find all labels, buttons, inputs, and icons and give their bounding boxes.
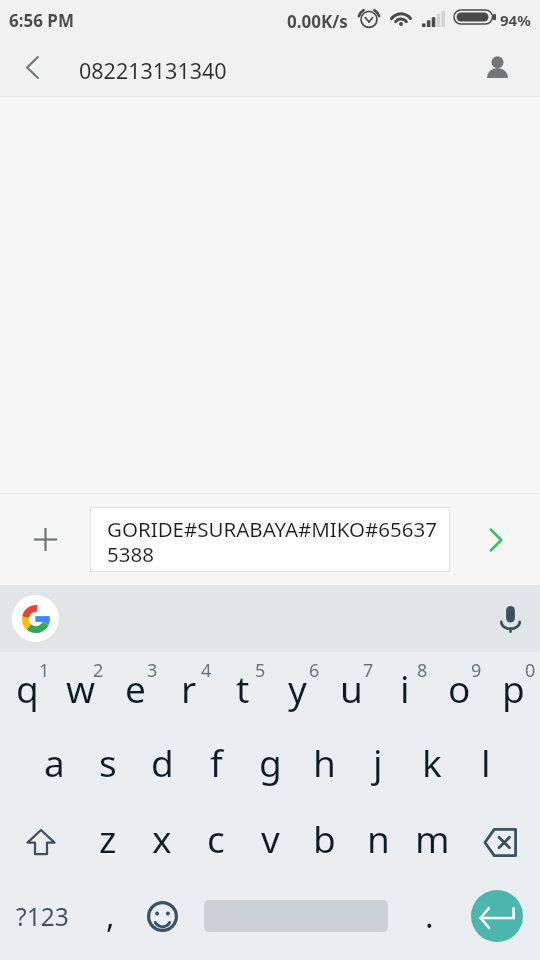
staticText: z <box>99 813 117 863</box>
button[interactable]: v <box>243 804 297 880</box>
staticText: 7 <box>363 658 374 683</box>
button[interactable]: g <box>243 728 297 804</box>
staticText: n <box>367 813 390 863</box>
button[interactable]: u <box>324 652 378 728</box>
button[interactable]: x <box>135 804 189 880</box>
button[interactable]: m <box>405 804 459 880</box>
button[interactable]: n <box>351 804 405 880</box>
staticText: y <box>288 663 307 713</box>
staticText: q <box>16 663 39 713</box>
button[interactable]: w <box>54 652 108 728</box>
button[interactable]: a <box>27 728 81 804</box>
button[interactable]: k <box>405 728 459 804</box>
staticText: r <box>181 663 197 713</box>
staticText: a <box>44 737 65 787</box>
staticText: ?123 <box>16 900 69 933</box>
button[interactable]: t <box>216 652 270 728</box>
staticText: 0 <box>525 658 536 683</box>
button[interactable]: Enter <box>452 880 540 960</box>
staticText: x <box>152 813 172 863</box>
button[interactable]: Shift <box>0 804 81 880</box>
staticText: t <box>236 663 250 713</box>
button[interactable]: d <box>135 728 189 804</box>
button[interactable]: GORIDE#SURABAYA#MIKO#656375388 <box>90 507 450 572</box>
staticText: u <box>340 663 363 713</box>
staticText: h <box>313 737 336 787</box>
staticText: v <box>261 813 280 863</box>
staticText: 5 <box>255 658 266 683</box>
staticText: s <box>99 737 117 787</box>
staticText: m <box>415 813 450 863</box>
staticText: 4 <box>201 658 212 683</box>
button[interactable]: Space <box>188 880 406 960</box>
staticText: 6:56 PM <box>9 9 74 32</box>
staticText: 082213131340 <box>79 56 227 85</box>
button[interactable]: j <box>351 728 405 804</box>
button[interactable]: Voice input <box>488 597 532 641</box>
staticText: 6 <box>309 658 320 683</box>
staticText: f <box>210 737 223 787</box>
staticText: 3 <box>147 658 158 683</box>
staticText: g <box>259 737 282 787</box>
staticText: 94% <box>500 10 531 30</box>
button[interactable]: z <box>81 804 135 880</box>
button[interactable]: e <box>108 652 162 728</box>
button[interactable]: p <box>486 652 540 728</box>
button[interactable]: i <box>378 652 432 728</box>
button[interactable]: h <box>297 728 351 804</box>
button[interactable]: Emoji <box>136 880 188 960</box>
staticText: c <box>207 813 225 863</box>
staticText: p <box>502 663 525 713</box>
button[interactable]: r <box>162 652 216 728</box>
button[interactable]: Backspace <box>459 804 540 880</box>
button[interactable]: b <box>297 804 351 880</box>
staticText: , <box>106 894 115 938</box>
button[interactable]: . <box>406 880 452 960</box>
staticText: w <box>66 663 96 713</box>
staticText: GORIDE#SURABAYA#MIKO#656375388 <box>107 515 442 568</box>
button[interactable]: Contact details <box>475 53 520 98</box>
button[interactable]: ?123 <box>0 880 84 960</box>
button[interactable]: o <box>432 652 486 728</box>
button[interactable]: Back <box>10 46 54 90</box>
button[interactable]: l <box>459 728 513 804</box>
button[interactable]: q <box>0 652 54 728</box>
staticText: . <box>425 894 434 938</box>
staticText: 9 <box>471 658 482 683</box>
button[interactable]: c <box>189 804 243 880</box>
button[interactable]: y <box>270 652 324 728</box>
staticText: d <box>151 737 174 787</box>
staticText: 1 <box>39 658 50 683</box>
button[interactable]: s <box>81 728 135 804</box>
staticText: i <box>400 663 410 713</box>
staticText: e <box>125 663 146 713</box>
staticText: 2 <box>93 658 104 683</box>
staticText: b <box>313 813 336 863</box>
button[interactable]: , <box>84 880 136 960</box>
button[interactable]: Google search <box>12 595 59 642</box>
staticText: j <box>373 737 383 787</box>
staticText: o <box>448 663 471 713</box>
button[interactable]: Send message <box>473 517 519 563</box>
staticText: k <box>422 737 442 787</box>
button[interactable]: Add attachment <box>22 516 68 562</box>
staticText: l <box>481 737 491 787</box>
staticText: 8 <box>417 658 428 683</box>
staticText: 0.00K/s <box>287 10 348 33</box>
button[interactable]: f <box>189 728 243 804</box>
